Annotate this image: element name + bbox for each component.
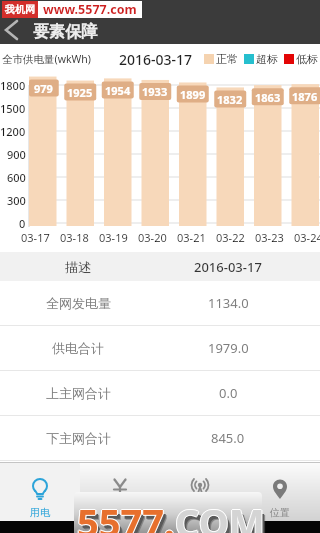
- staticText: 超标: [256, 52, 278, 66]
- staticText: 5577.: [78, 496, 176, 533]
- button[interactable]: 资金: [80, 463, 160, 521]
- staticText: 1899: [180, 87, 206, 102]
- staticText: 2016-03-17: [119, 50, 193, 69]
- staticText: COM: [174, 496, 264, 533]
- staticText: 1800: [0, 78, 26, 93]
- staticText: 资金: [110, 506, 130, 519]
- button[interactable]: [0, 14, 30, 44]
- staticText: 1933: [142, 84, 168, 99]
- staticText: 300: [7, 193, 26, 208]
- staticText: 1832: [217, 92, 243, 107]
- staticText: 0.0: [219, 384, 238, 402]
- staticText: COM: [178, 500, 268, 533]
- staticText: 5577.: [77, 497, 175, 533]
- staticText: 下主网合计: [46, 430, 111, 446]
- staticText: 全市供电量(wkWh): [2, 52, 91, 66]
- staticText: 03-23: [255, 230, 284, 244]
- staticText: 1134.0: [208, 294, 249, 312]
- staticText: 845.0: [211, 429, 245, 447]
- button[interactable]: 通信: [160, 463, 240, 521]
- button[interactable]: 用电: [0, 463, 80, 521]
- staticText: 03-17: [21, 230, 50, 244]
- staticText: COM: [175, 495, 265, 533]
- staticText: 要素保障: [33, 22, 97, 42]
- staticText: 位置: [270, 506, 290, 519]
- staticText: 600: [7, 170, 26, 185]
- staticText: COM: [176, 496, 266, 533]
- staticText: 低标: [296, 52, 318, 66]
- staticText: 5577.: [81, 501, 179, 533]
- staticText: 5577.: [80, 500, 178, 533]
- staticText: 1863: [255, 90, 281, 105]
- staticText: COM: [179, 501, 269, 533]
- staticText: 5577.: [76, 496, 174, 533]
- staticText: 我机网: [5, 3, 35, 16]
- staticText: 供电合计: [52, 340, 104, 356]
- staticText: 全网发电量: [46, 295, 111, 311]
- staticText: COM: [175, 497, 265, 533]
- staticText: 正常: [216, 52, 238, 66]
- staticText: 5577.: [77, 495, 175, 533]
- staticText: 1200: [0, 124, 26, 139]
- staticText: 1876: [292, 89, 318, 104]
- staticText: 描述: [65, 259, 91, 275]
- staticText: 03-22: [216, 230, 245, 244]
- staticText: 0: [19, 216, 26, 231]
- staticText: 03-24: [294, 230, 320, 244]
- staticText: 通信: [190, 506, 210, 519]
- staticText: 979: [34, 81, 53, 96]
- staticText: 2016-03-17: [194, 258, 262, 276]
- staticText: 03-19: [99, 230, 128, 244]
- staticText: COM: [175, 496, 265, 533]
- staticText: 1925: [67, 85, 93, 100]
- staticText: 03-20: [138, 230, 167, 244]
- staticText: 1979.0: [208, 339, 249, 357]
- staticText: 上主网合计: [46, 385, 111, 401]
- staticText: 03-18: [60, 230, 89, 244]
- button[interactable]: 位置: [240, 463, 320, 521]
- staticText: 03-21: [177, 230, 206, 244]
- staticText: www.5577.com: [43, 1, 137, 18]
- staticText: 1500: [0, 101, 26, 116]
- staticText: 1954: [105, 83, 131, 98]
- staticText: 5577.: [77, 496, 175, 533]
- staticText: 900: [7, 147, 26, 162]
- staticText: 用电: [30, 506, 50, 519]
